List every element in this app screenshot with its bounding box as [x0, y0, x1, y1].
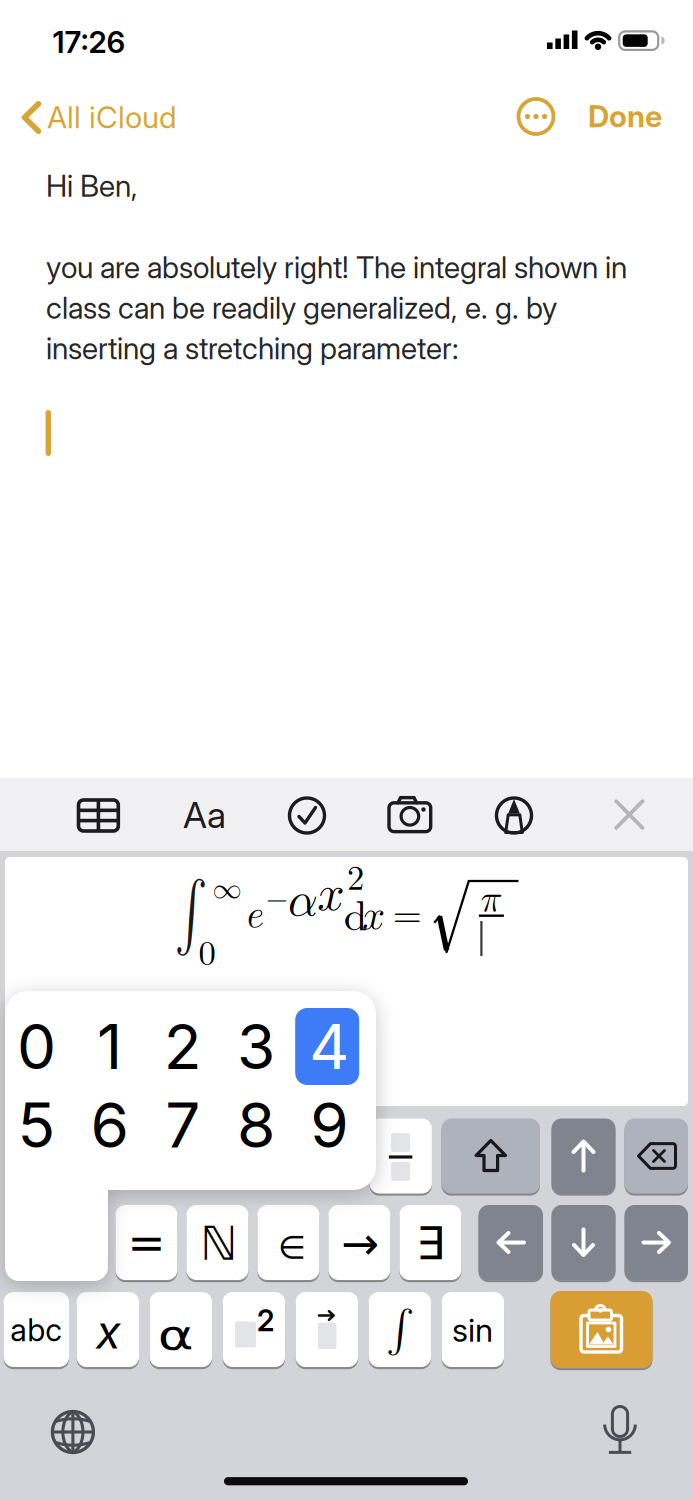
button[interactable]: Fraction: [369, 1118, 432, 1193]
staticText: d: [344, 882, 368, 943]
button[interactable]: there exists: [399, 1205, 461, 1280]
staticText: 2: [164, 1009, 202, 1084]
button[interactable]: More actions: [518, 99, 553, 134]
staticText: ∃: [416, 1217, 445, 1270]
button[interactable]: vector: [296, 1292, 358, 1367]
staticText: 5: [17, 1087, 55, 1162]
staticText: 8: [237, 1087, 275, 1162]
button[interactable]: Delete: [624, 1118, 688, 1193]
staticText: ℕ: [200, 1216, 237, 1271]
button[interactable]: x: [77, 1292, 139, 1367]
staticText: you are absolutely right! The integral s…: [46, 249, 627, 285]
button[interactable]: Shift: [441, 1118, 540, 1193]
staticText: ∫: [173, 887, 208, 940]
staticText: ∫: [386, 1308, 414, 1351]
staticText: 𝑥: [362, 896, 385, 936]
staticText: →: [341, 1217, 379, 1270]
staticText: 3: [237, 1009, 275, 1084]
staticText: 0: [17, 1009, 56, 1084]
staticText: Done: [588, 98, 662, 134]
staticText: 0: [198, 926, 215, 975]
staticText: 6: [91, 1087, 129, 1162]
button[interactable]: Dismiss keyboard: [604, 789, 654, 839]
button[interactable]: Move left: [478, 1205, 543, 1280]
staticText: Aa: [183, 793, 226, 837]
staticText: Hi Ben,: [46, 168, 138, 204]
staticText: 9: [310, 1087, 348, 1162]
staticText: All iCloud: [47, 99, 177, 135]
staticText: =: [393, 885, 422, 938]
staticText: α: [162, 1311, 189, 1359]
staticText: inserting a stretching parameter:: [46, 330, 459, 366]
button[interactable]: Move down: [551, 1205, 615, 1280]
button[interactable]: Done: [588, 98, 662, 134]
button[interactable]: Markup: [486, 787, 542, 843]
button[interactable]: abc: [4, 1292, 69, 1367]
button[interactable]: superscript: [223, 1292, 285, 1367]
button[interactable]: Insert table: [70, 787, 126, 843]
button[interactable]: Move up: [551, 1118, 615, 1193]
staticText: 4: [309, 1009, 349, 1084]
button[interactable]: Dictate: [592, 1401, 648, 1457]
staticText: 17:26: [52, 24, 125, 60]
button[interactable]: natural numbers: [186, 1205, 248, 1280]
button[interactable]: element of: [257, 1205, 319, 1280]
button[interactable]: equals: [115, 1205, 177, 1280]
staticText: ∈: [278, 1229, 306, 1266]
staticText: 𝑒: [247, 897, 264, 934]
staticText: 1: [97, 1009, 122, 1084]
button[interactable]: Paste image: [550, 1291, 652, 1368]
button[interactable]: alpha: [150, 1292, 212, 1367]
button[interactable]: Insert photo: [382, 787, 438, 843]
staticText: =: [127, 1217, 165, 1269]
staticText: x: [96, 1305, 121, 1359]
staticText: abc: [10, 1311, 62, 1348]
staticText: class can be readily generalized, e. g. …: [46, 290, 557, 326]
staticText: −: [266, 885, 288, 913]
staticText: 2: [347, 851, 364, 900]
staticText: 𝛼: [288, 878, 318, 924]
staticText: ∞: [212, 875, 241, 904]
staticText: 𝜋: [480, 881, 501, 918]
staticText: sin: [452, 1311, 493, 1349]
button[interactable]: Next keyboard: [45, 1404, 101, 1460]
staticText: 2: [257, 1303, 275, 1338]
button[interactable]: Back, All iCloud: [0, 91, 180, 143]
button[interactable]: Move right: [624, 1205, 688, 1280]
button[interactable]: Checklist: [279, 787, 335, 843]
button[interactable]: Text format: [183, 793, 226, 837]
button[interactable]: sin: [442, 1292, 504, 1367]
staticText: 7: [165, 1087, 200, 1162]
button[interactable]: arrow: [328, 1205, 390, 1280]
staticText: 𝑥: [317, 871, 344, 919]
button[interactable]: integral: [369, 1292, 431, 1367]
